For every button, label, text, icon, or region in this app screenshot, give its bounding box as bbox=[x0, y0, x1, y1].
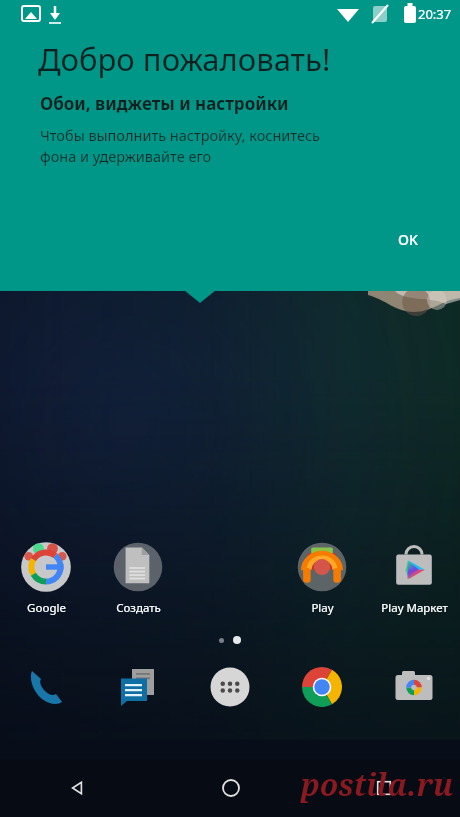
staticText: Добро пожаловать! bbox=[38, 38, 331, 80]
button[interactable]: Play Маркет bbox=[368, 538, 460, 618]
staticText: Чтобы выполнить настройку, коснитесь фон… bbox=[40, 125, 320, 167]
button[interactable]: Messages bbox=[92, 656, 184, 718]
button[interactable]: Home bbox=[154, 759, 307, 817]
button[interactable]: Google bbox=[0, 538, 92, 618]
button[interactable]: Chrome bbox=[276, 656, 368, 718]
staticText: 20:37 bbox=[418, 5, 452, 23]
staticText: Google bbox=[27, 600, 66, 616]
button[interactable]: Phone bbox=[0, 656, 92, 718]
button[interactable]: Создать bbox=[92, 538, 184, 618]
staticText: postila.ru bbox=[301, 764, 454, 805]
button[interactable]: All apps bbox=[184, 656, 276, 718]
staticText: Play Маркет bbox=[381, 600, 448, 616]
button[interactable]: Camera bbox=[368, 656, 460, 718]
staticText: Создать bbox=[116, 600, 161, 616]
staticText: Обои, виджеты и настройки bbox=[40, 92, 289, 115]
button[interactable]: Back bbox=[0, 759, 154, 817]
button[interactable]: Play bbox=[276, 538, 368, 618]
staticText: OK bbox=[398, 230, 418, 249]
staticText: Play bbox=[311, 600, 334, 616]
button[interactable]: OK bbox=[388, 224, 428, 255]
button[interactable]: Recent apps bbox=[307, 759, 460, 817]
